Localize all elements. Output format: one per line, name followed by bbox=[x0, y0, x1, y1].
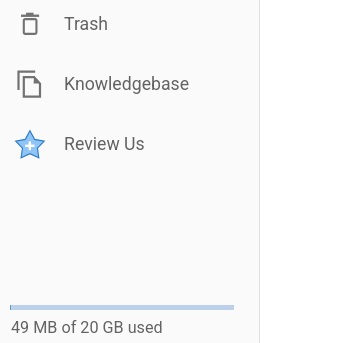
staticText: Review Us bbox=[64, 134, 145, 155]
staticText: Knowledgebase bbox=[64, 74, 190, 95]
staticText: 49 MB of 20 GB used bbox=[11, 318, 163, 337]
button[interactable]: Storage used bbox=[10, 305, 234, 310]
button[interactable]: Knowledgebase bbox=[0, 54, 259, 114]
staticText: Trash bbox=[64, 14, 109, 35]
button[interactable]: Review Us bbox=[0, 114, 259, 174]
other: Review Us bbox=[0, 114, 64, 174]
button[interactable]: Trash bbox=[0, 0, 259, 54]
